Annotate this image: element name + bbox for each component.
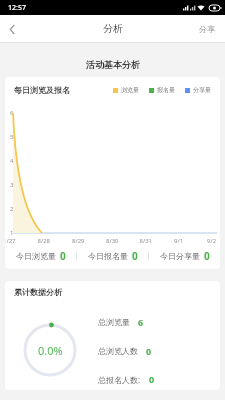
staticText: 6 xyxy=(138,316,144,328)
staticText: 分享 xyxy=(199,24,215,34)
staticText: 0 xyxy=(60,249,66,263)
staticText: 12:57 xyxy=(8,3,26,13)
staticText: 总浏览人数 xyxy=(98,346,138,356)
staticText: 今日浏览量 xyxy=(16,251,56,261)
staticText: 报名量 xyxy=(157,86,175,94)
staticText: 0 xyxy=(132,249,138,263)
button[interactable] xyxy=(0,17,24,41)
staticText: 0 xyxy=(149,373,155,385)
staticText: 分析 xyxy=(103,22,123,35)
button[interactable]: 分享 xyxy=(189,18,225,40)
staticText: 总报名人数: xyxy=(98,374,141,385)
staticText: 累计数据分析 xyxy=(14,287,62,297)
staticText: 今日报名量 xyxy=(88,251,128,261)
staticText: 0 xyxy=(204,249,210,263)
staticText: 浏览量 xyxy=(121,86,139,94)
staticText: 分享量 xyxy=(193,86,211,94)
staticText: 活动基本分析 xyxy=(86,59,140,70)
staticText: 今日分享量 xyxy=(160,251,200,261)
staticText: 0 xyxy=(146,345,152,357)
staticText: 0.0% xyxy=(38,343,63,358)
staticText: 每日浏览及报名 xyxy=(14,85,70,95)
staticText: 总浏览量 xyxy=(98,317,130,327)
